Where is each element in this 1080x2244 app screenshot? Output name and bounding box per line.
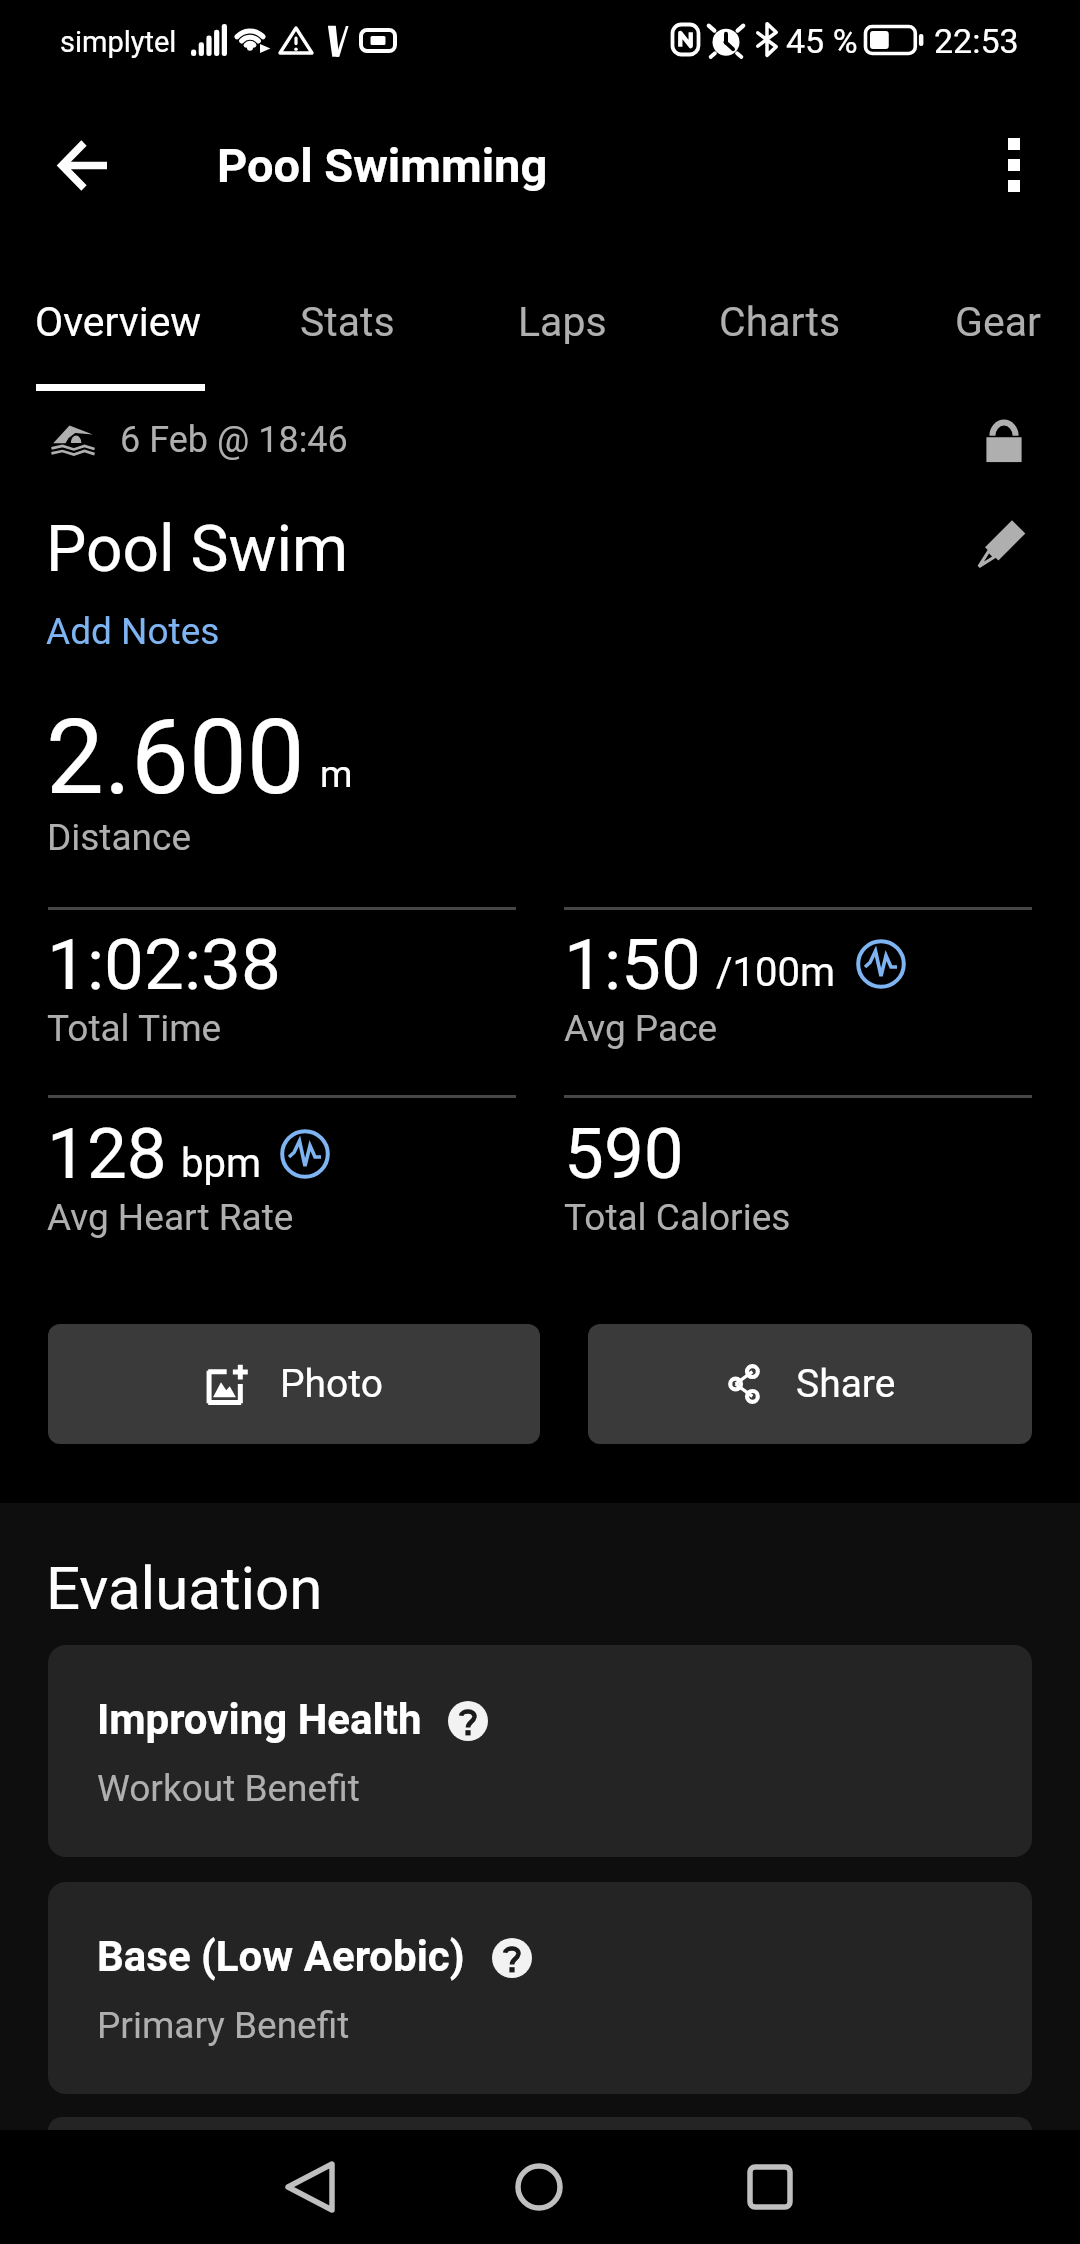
staticText: m [320, 753, 353, 796]
button[interactable]: Help [448, 1701, 488, 1741]
button[interactable]: Recent apps [715, 2132, 825, 2242]
button[interactable]: Add Notes [46, 610, 220, 653]
staticText: Gear [955, 298, 1041, 346]
staticText: simplytel [60, 25, 177, 59]
staticText: Charts [719, 298, 841, 346]
staticText: Avg Pace [564, 1007, 718, 1050]
staticText: Pool Swimming [217, 138, 548, 193]
staticText: Evaluation [46, 1553, 323, 1623]
staticText: Stats [300, 298, 395, 346]
staticText: Improving Health [97, 1695, 422, 1744]
staticText: 1:02:38 [47, 923, 281, 1006]
staticText: bpm [181, 1140, 261, 1187]
button[interactable]: Stats [254, 286, 440, 358]
button[interactable]: Base (Low Aerobic) [48, 1882, 1032, 2094]
staticText: Total Time [47, 1007, 222, 1050]
staticText: Avg Heart Rate [47, 1196, 294, 1239]
staticText: 590 [564, 1112, 684, 1195]
button[interactable]: Share [588, 1324, 1032, 1444]
staticText: 6 Feb @ 18:46 [120, 419, 348, 461]
button[interactable]: Help [492, 1938, 532, 1978]
staticText: 45 % [786, 21, 858, 61]
button[interactable]: Edit [958, 497, 1048, 587]
staticText: 2.600 [46, 697, 305, 818]
button[interactable]: Home [484, 2132, 594, 2242]
button[interactable]: Overview [0, 286, 245, 358]
staticText: 128 [47, 1112, 167, 1195]
button[interactable]: Improving Health [48, 1645, 1032, 1857]
staticText: 22:53 [934, 21, 1019, 61]
staticText: Photo [280, 1361, 383, 1407]
staticText: Laps [518, 298, 607, 346]
button[interactable]: More options [958, 109, 1070, 221]
button[interactable]: Photo [48, 1324, 540, 1444]
staticText: 1:50 [564, 923, 701, 1006]
button[interactable]: Back [28, 109, 140, 221]
staticText: Base (Low Aerobic) [97, 1932, 465, 1981]
staticText: /100m [716, 949, 836, 996]
button[interactable]: Charts [676, 286, 884, 358]
staticText: Distance [47, 816, 192, 859]
staticText: Overview [35, 298, 202, 346]
button[interactable]: Gear [892, 286, 1080, 358]
staticText: Primary Benefit [97, 2004, 350, 2047]
button[interactable]: Back [255, 2132, 365, 2242]
staticText: Workout Benefit [97, 1767, 360, 1810]
button[interactable]: Laps [475, 286, 650, 358]
staticText: Share [796, 1361, 896, 1407]
staticText: Total Calories [564, 1196, 791, 1239]
button[interactable]: Privacy [966, 402, 1042, 478]
staticText: Pool Swim [46, 512, 349, 587]
